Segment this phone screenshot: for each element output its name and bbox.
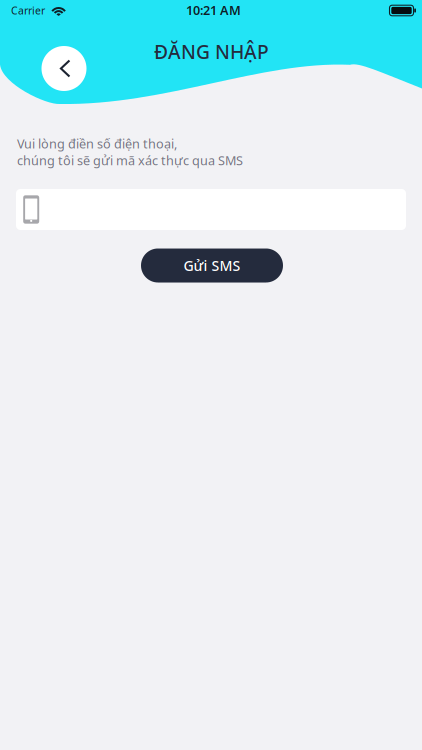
staticText: chúng tôi sẽ gửi mã xác thực qua SMS [17,152,243,169]
staticText: Carrier [11,3,45,18]
staticText: Vui lòng điền số điện thoại, [17,135,177,152]
staticText: Gửi SMS [183,256,240,275]
button[interactable]: Back [41,46,86,91]
button[interactable]: Gửi SMS [141,248,283,282]
staticText: ĐĂNG NHẬP [154,38,269,65]
staticText: 10:21 AM [186,1,241,19]
